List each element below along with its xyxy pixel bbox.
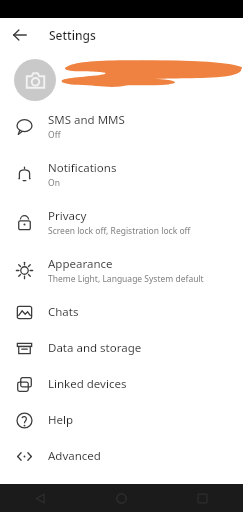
button[interactable]: Advanced [0, 438, 243, 474]
staticText: Advanced [48, 448, 101, 464]
button[interactable]: Chats [0, 294, 243, 330]
button[interactable]: Help [0, 402, 243, 438]
staticText: Settings [49, 27, 96, 43]
staticText: On [48, 177, 60, 189]
button[interactable]: SMS and MMS [0, 102, 243, 150]
staticText: Notifications [48, 160, 117, 176]
button[interactable]: Linked devices [0, 366, 243, 402]
staticText: Off [48, 129, 61, 141]
staticText: Privacy [48, 208, 87, 224]
staticText: Appearance [48, 256, 113, 272]
button[interactable]: Back [8, 23, 32, 47]
staticText: Data and storage [48, 340, 142, 356]
button[interactable] [0, 52, 243, 102]
staticText: Chats [48, 304, 79, 320]
staticText: Theme Light, Language System default [48, 273, 204, 285]
staticText: Linked devices [48, 376, 127, 392]
staticText: Screen lock off, Registration lock off [48, 225, 191, 237]
button[interactable]: Privacy [0, 198, 243, 246]
button[interactable]: Notifications [0, 150, 243, 198]
button[interactable]: Appearance [0, 246, 243, 294]
staticText: Help [48, 412, 74, 428]
staticText: SMS and MMS [48, 112, 125, 128]
button[interactable]: Data and storage [0, 330, 243, 366]
